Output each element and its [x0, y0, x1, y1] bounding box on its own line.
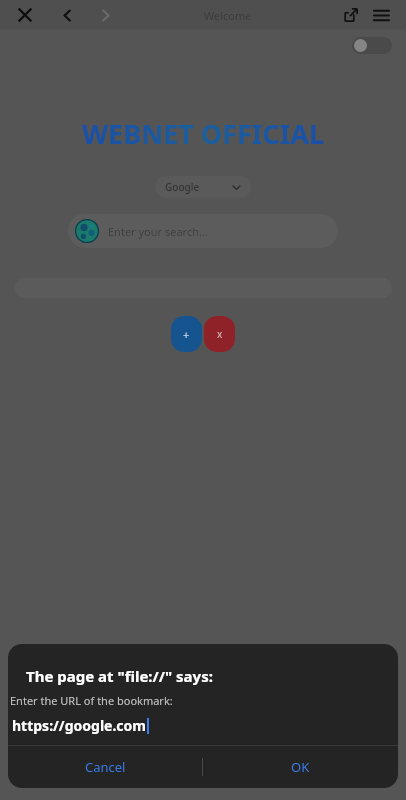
button[interactable]: Remove bookmark [204, 316, 235, 352]
button[interactable]: Back [52, 0, 82, 30]
staticText: Enter the URL of the bookmark: [10, 693, 173, 708]
staticText: The page at "file://" says: [26, 666, 213, 686]
staticText: OK [291, 758, 310, 776]
button[interactable]: Menu [366, 0, 396, 30]
button[interactable]: Enter your search... [68, 214, 338, 248]
staticText: x [217, 327, 223, 341]
staticText: Cancel [85, 758, 126, 776]
staticText: Google [165, 180, 200, 194]
staticText: + [183, 327, 190, 342]
button[interactable]: Open in new window [336, 0, 366, 30]
button[interactable]: Forward [90, 0, 120, 30]
button[interactable]: Cancel [8, 746, 202, 788]
button[interactable]: Toggle [352, 37, 392, 54]
button[interactable]: OK [203, 746, 398, 788]
staticText: Welcome [204, 8, 252, 23]
button[interactable]: Add bookmark [171, 316, 202, 352]
staticText: WEBNET OFFICIAL [82, 115, 324, 152]
staticText: https://google.com [12, 716, 146, 735]
button[interactable]: Close [10, 0, 40, 30]
staticText: Enter your search... [108, 224, 208, 239]
button[interactable]: Google [155, 176, 251, 198]
